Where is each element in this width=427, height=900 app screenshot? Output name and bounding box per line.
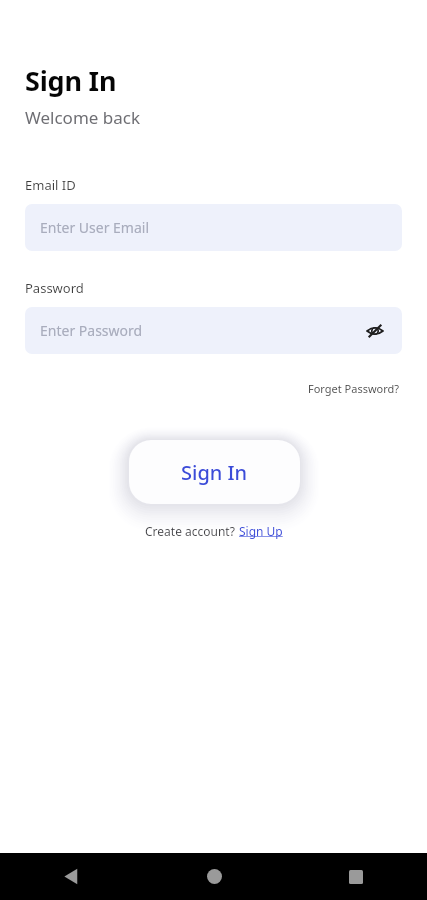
staticText: Forget Password? — [308, 381, 400, 396]
staticText: Email ID — [25, 176, 76, 194]
staticText: Password — [25, 279, 84, 297]
button[interactable]: Back — [0, 853, 143, 900]
button[interactable]: Recents — [285, 853, 427, 900]
button[interactable]: Sign In — [129, 440, 300, 504]
staticText: Enter Password — [40, 321, 143, 340]
button[interactable]: Sign Up — [239, 523, 283, 539]
staticText: Sign In — [25, 62, 117, 99]
staticText: Welcome back — [25, 106, 141, 129]
staticText: Sign In — [181, 459, 248, 486]
staticText: Sign Up — [239, 523, 283, 539]
button[interactable]: Home — [143, 853, 285, 900]
button[interactable]: Enter User Email — [25, 204, 402, 251]
staticText: Create account? — [145, 523, 235, 539]
button[interactable]: Show password — [362, 318, 388, 344]
button[interactable]: Forget Password? — [306, 378, 402, 399]
staticText: Enter User Email — [40, 218, 150, 237]
button[interactable]: Enter Password — [25, 307, 402, 354]
